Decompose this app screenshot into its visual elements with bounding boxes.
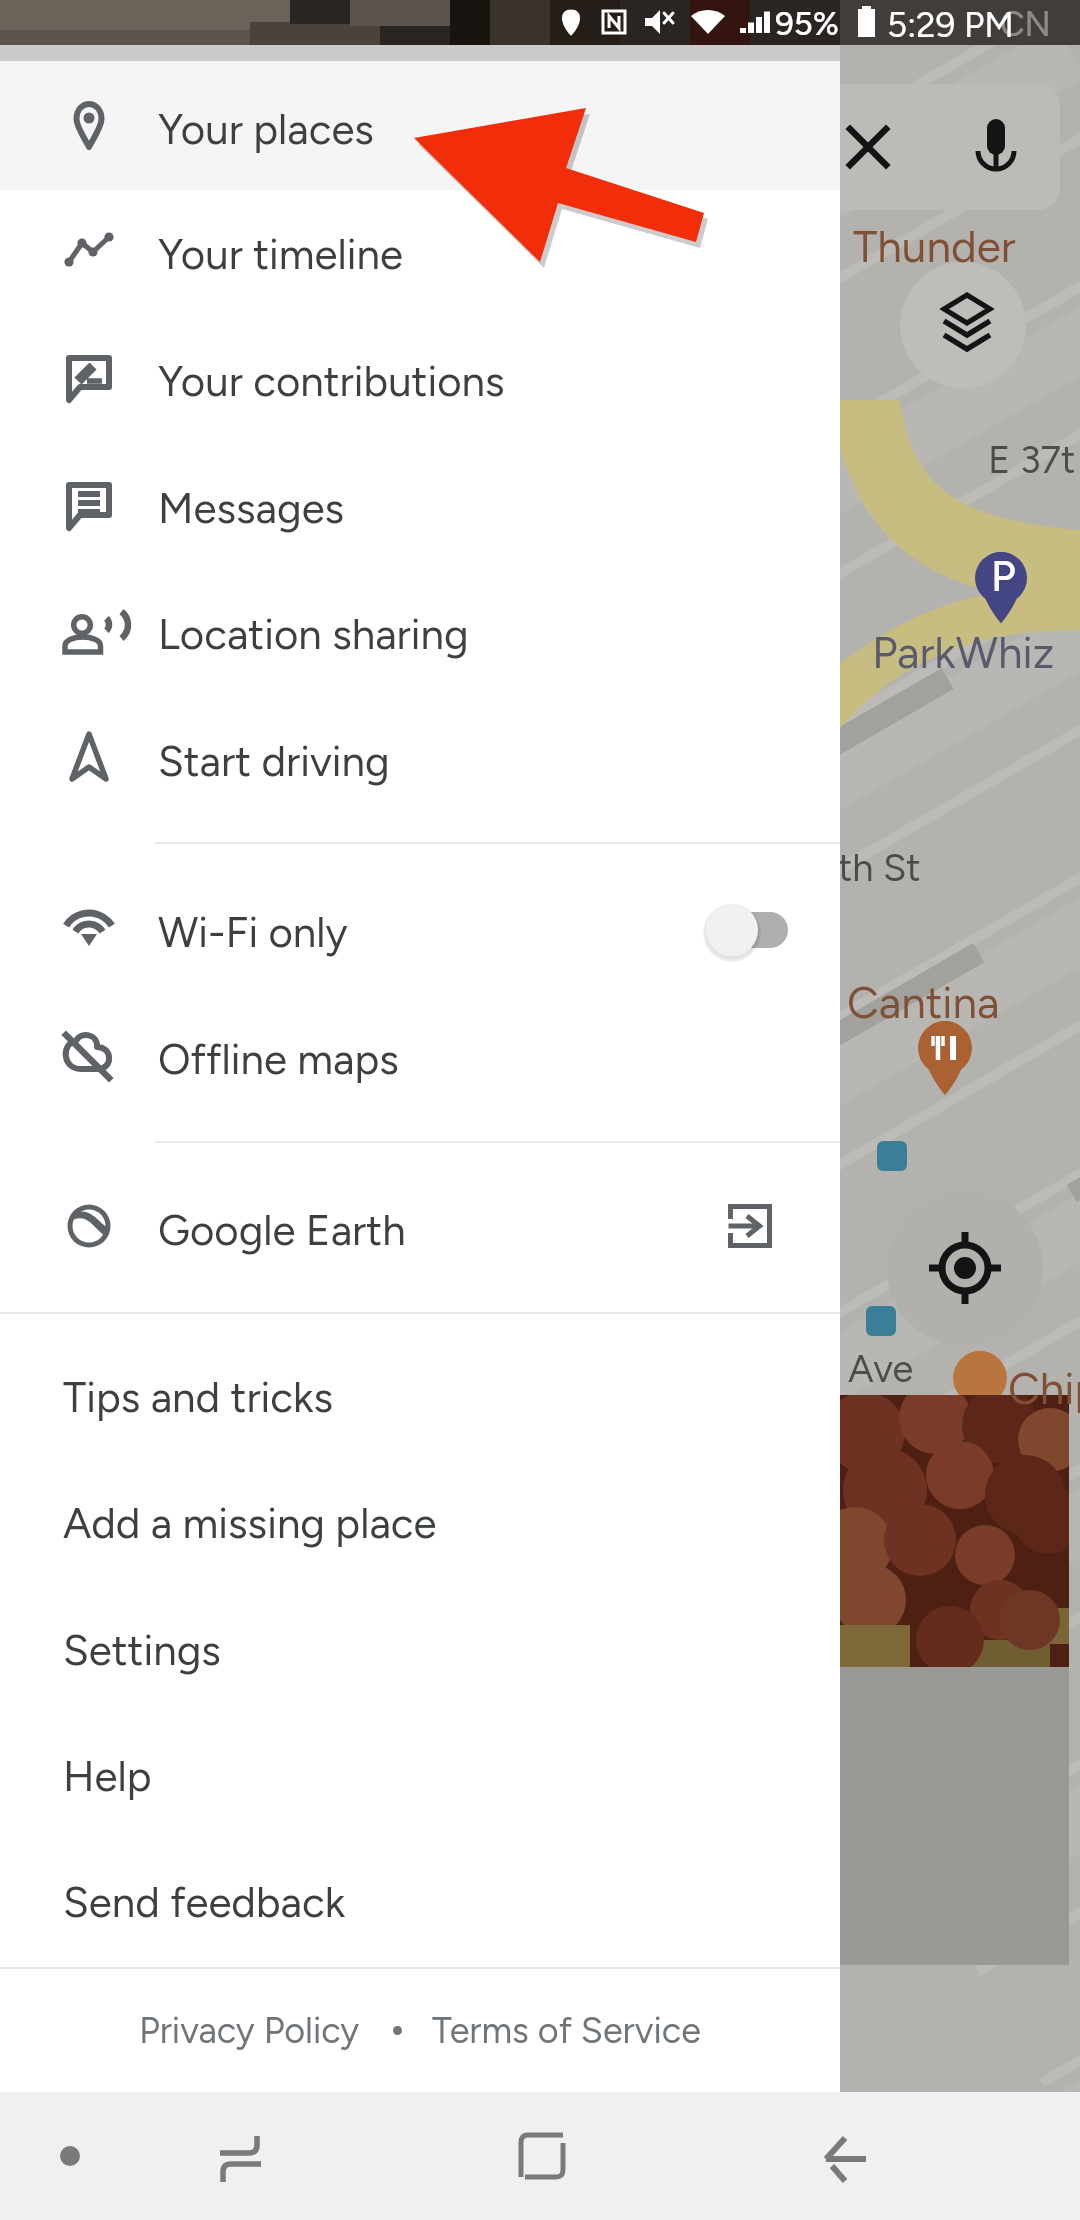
staticText: P xyxy=(991,551,1016,601)
button[interactable]: Your places xyxy=(0,62,840,188)
staticText: Thunder xyxy=(853,220,1016,273)
button[interactable]: Privacy Policy xyxy=(139,2009,360,2052)
staticText: Cantina xyxy=(847,976,1000,1029)
staticText: Your places xyxy=(158,104,374,154)
button[interactable]: Tips and tricks xyxy=(0,1331,840,1457)
button[interactable]: Wi-Fi only xyxy=(0,865,840,991)
button[interactable]: Help xyxy=(0,1710,840,1836)
staticText: Location sharing xyxy=(158,609,469,659)
button[interactable]: Offline maps xyxy=(0,992,840,1118)
staticText: E 37t xyxy=(988,437,1076,483)
staticText: th St xyxy=(838,845,921,891)
button[interactable]: Google Earth xyxy=(0,1163,840,1289)
button[interactable]: Open Google Earth xyxy=(705,1181,795,1271)
staticText: 5:29 PM xyxy=(887,4,1014,46)
staticText: Help xyxy=(63,1751,152,1801)
staticText: Send feedback xyxy=(63,1877,346,1927)
button[interactable]: Your contributions xyxy=(0,314,840,440)
staticText: Messages xyxy=(158,483,345,533)
button[interactable]: Start driving xyxy=(0,694,840,820)
staticText: Chip xyxy=(1008,1362,1080,1415)
staticText: CN xyxy=(1000,4,1051,45)
button[interactable]: Wi-Fi only toggle xyxy=(690,882,810,978)
button[interactable]: Your timeline xyxy=(0,187,840,313)
button[interactable]: Send feedback xyxy=(0,1836,840,1962)
staticText: Add a missing place xyxy=(63,1498,437,1548)
staticText: Google Earth xyxy=(158,1205,406,1255)
staticText: Tips and tricks xyxy=(63,1372,334,1422)
staticText: Offline maps xyxy=(158,1034,399,1084)
button[interactable]: Terms of Service xyxy=(432,2009,701,2052)
staticText: 95% xyxy=(775,4,839,44)
button[interactable]: Add a missing place xyxy=(0,1457,840,1583)
staticText: Wi-Fi only xyxy=(158,907,348,957)
button[interactable]: Messages xyxy=(0,441,840,567)
button[interactable]: Location sharing xyxy=(0,567,840,693)
staticText: ParkWhiz xyxy=(872,626,1055,679)
staticText: Your timeline xyxy=(158,229,403,279)
staticText: Start driving xyxy=(158,736,390,786)
button[interactable]: Settings xyxy=(0,1584,840,1710)
staticText: Settings xyxy=(63,1625,221,1675)
staticText: Privacy Policy xyxy=(139,2009,360,2052)
staticText: Ave xyxy=(848,1346,914,1392)
staticText: Your contributions xyxy=(158,356,505,406)
staticText: Terms of Service xyxy=(432,2009,701,2052)
